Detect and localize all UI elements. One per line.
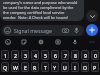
staticText: 4 <box>34 52 37 59</box>
staticText: R <box>33 64 37 71</box>
button[interactable]: Voice input <box>66 36 83 48</box>
staticText: W <box>13 64 18 71</box>
button[interactable]: 8 <box>71 50 79 60</box>
button[interactable]: Add attachment <box>86 24 98 36</box>
staticText: 2 <box>14 52 17 59</box>
button[interactable]: Q <box>1 62 9 72</box>
staticText: Signal message <box>14 27 52 34</box>
button[interactable]: W <box>11 62 19 72</box>
button[interactable]: E <box>21 62 29 72</box>
button[interactable]: 5 <box>41 50 49 60</box>
staticText: the company certified local service <box>3 10 65 15</box>
button[interactable]: O <box>81 62 89 72</box>
staticText: be used for the data compliment by the <box>3 5 74 10</box>
staticText: 8 <box>74 52 77 59</box>
staticText: 6 <box>54 52 57 59</box>
staticText: P <box>93 64 97 71</box>
staticText: vendor. Note: A Check will be issued <box>3 15 68 20</box>
staticText: O <box>83 64 88 71</box>
button[interactable]: 0 <box>91 50 99 60</box>
staticText: company's name and purpose who would <box>3 0 78 5</box>
staticText: 0 <box>94 52 97 59</box>
staticText: 7 <box>64 52 67 59</box>
staticText: T <box>44 64 47 71</box>
button[interactable]: Emoji <box>0 36 16 48</box>
button[interactable]: 4 <box>31 50 39 60</box>
button[interactable]: 3 <box>21 50 29 60</box>
button[interactable]: 9 <box>81 50 89 60</box>
staticText: Y <box>53 64 57 71</box>
button[interactable]: U <box>61 62 69 72</box>
button[interactable]: 7 <box>61 50 69 60</box>
button[interactable]: T <box>41 62 49 72</box>
staticText: 1 <box>4 52 7 59</box>
staticText: 5 <box>44 52 47 59</box>
button[interactable]: Scroll to bottom <box>86 10 98 22</box>
staticText: Q <box>3 64 8 71</box>
button[interactable]: Clipboard <box>49 36 66 48</box>
button[interactable]: Stickers <box>16 36 32 48</box>
button[interactable]: 1 <box>1 50 9 60</box>
button[interactable]: 6 <box>51 50 59 60</box>
staticText: U <box>63 64 67 71</box>
staticText: I <box>74 64 76 71</box>
staticText: E <box>24 64 27 71</box>
staticText: 9 <box>84 52 87 59</box>
button[interactable]: 2 <box>11 50 19 60</box>
button[interactable]: More options <box>83 36 100 48</box>
staticText: 3 <box>24 52 27 59</box>
button[interactable]: R <box>31 62 39 72</box>
button[interactable]: company's name and purpose who would <box>0 0 84 21</box>
button[interactable]: Signal message <box>2 25 84 36</box>
button[interactable]: Y <box>51 62 59 72</box>
button[interactable]: P <box>91 62 99 72</box>
button[interactable]: Translate <box>32 36 49 48</box>
button[interactable]: I <box>71 62 79 72</box>
